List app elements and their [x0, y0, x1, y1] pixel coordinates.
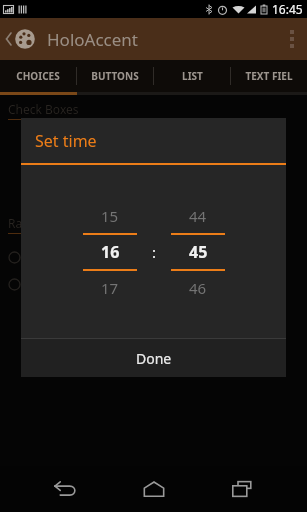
staticText: Set time	[35, 130, 97, 152]
staticText: CHOICES	[16, 69, 60, 83]
button[interactable]: Navigate up	[0, 18, 41, 60]
button[interactable]: LIST	[154, 60, 230, 92]
staticText: 46	[189, 278, 207, 298]
staticText: 15	[101, 206, 119, 226]
button[interactable]: CHOICES	[0, 60, 76, 92]
button[interactable]: More options	[277, 18, 307, 60]
button[interactable]: BUTTONS	[77, 60, 153, 92]
button[interactable]: 15	[79, 199, 141, 305]
staticText: 45	[189, 241, 208, 263]
button[interactable]: Done	[21, 339, 286, 377]
button[interactable]: 44	[167, 199, 229, 305]
staticText: HoloAccent	[47, 28, 138, 51]
staticText: 16	[101, 241, 120, 263]
staticText: Radio Buttons	[8, 215, 88, 231]
staticText: BUTTONS	[91, 69, 139, 83]
staticText: 44	[189, 206, 207, 226]
staticText: Check Boxes	[8, 101, 79, 117]
button[interactable]: Home	[130, 466, 178, 512]
staticText: TEXT FIEL	[245, 69, 293, 83]
staticText: 17	[101, 278, 119, 298]
staticText: LIST	[182, 69, 203, 83]
staticText: 16:45	[272, 1, 303, 17]
button[interactable]: TEXT FIEL	[231, 60, 307, 92]
staticText: Done	[136, 349, 172, 368]
button[interactable]: Recent apps	[218, 466, 266, 512]
staticText: :	[152, 242, 157, 262]
button[interactable]: Back	[41, 466, 89, 512]
